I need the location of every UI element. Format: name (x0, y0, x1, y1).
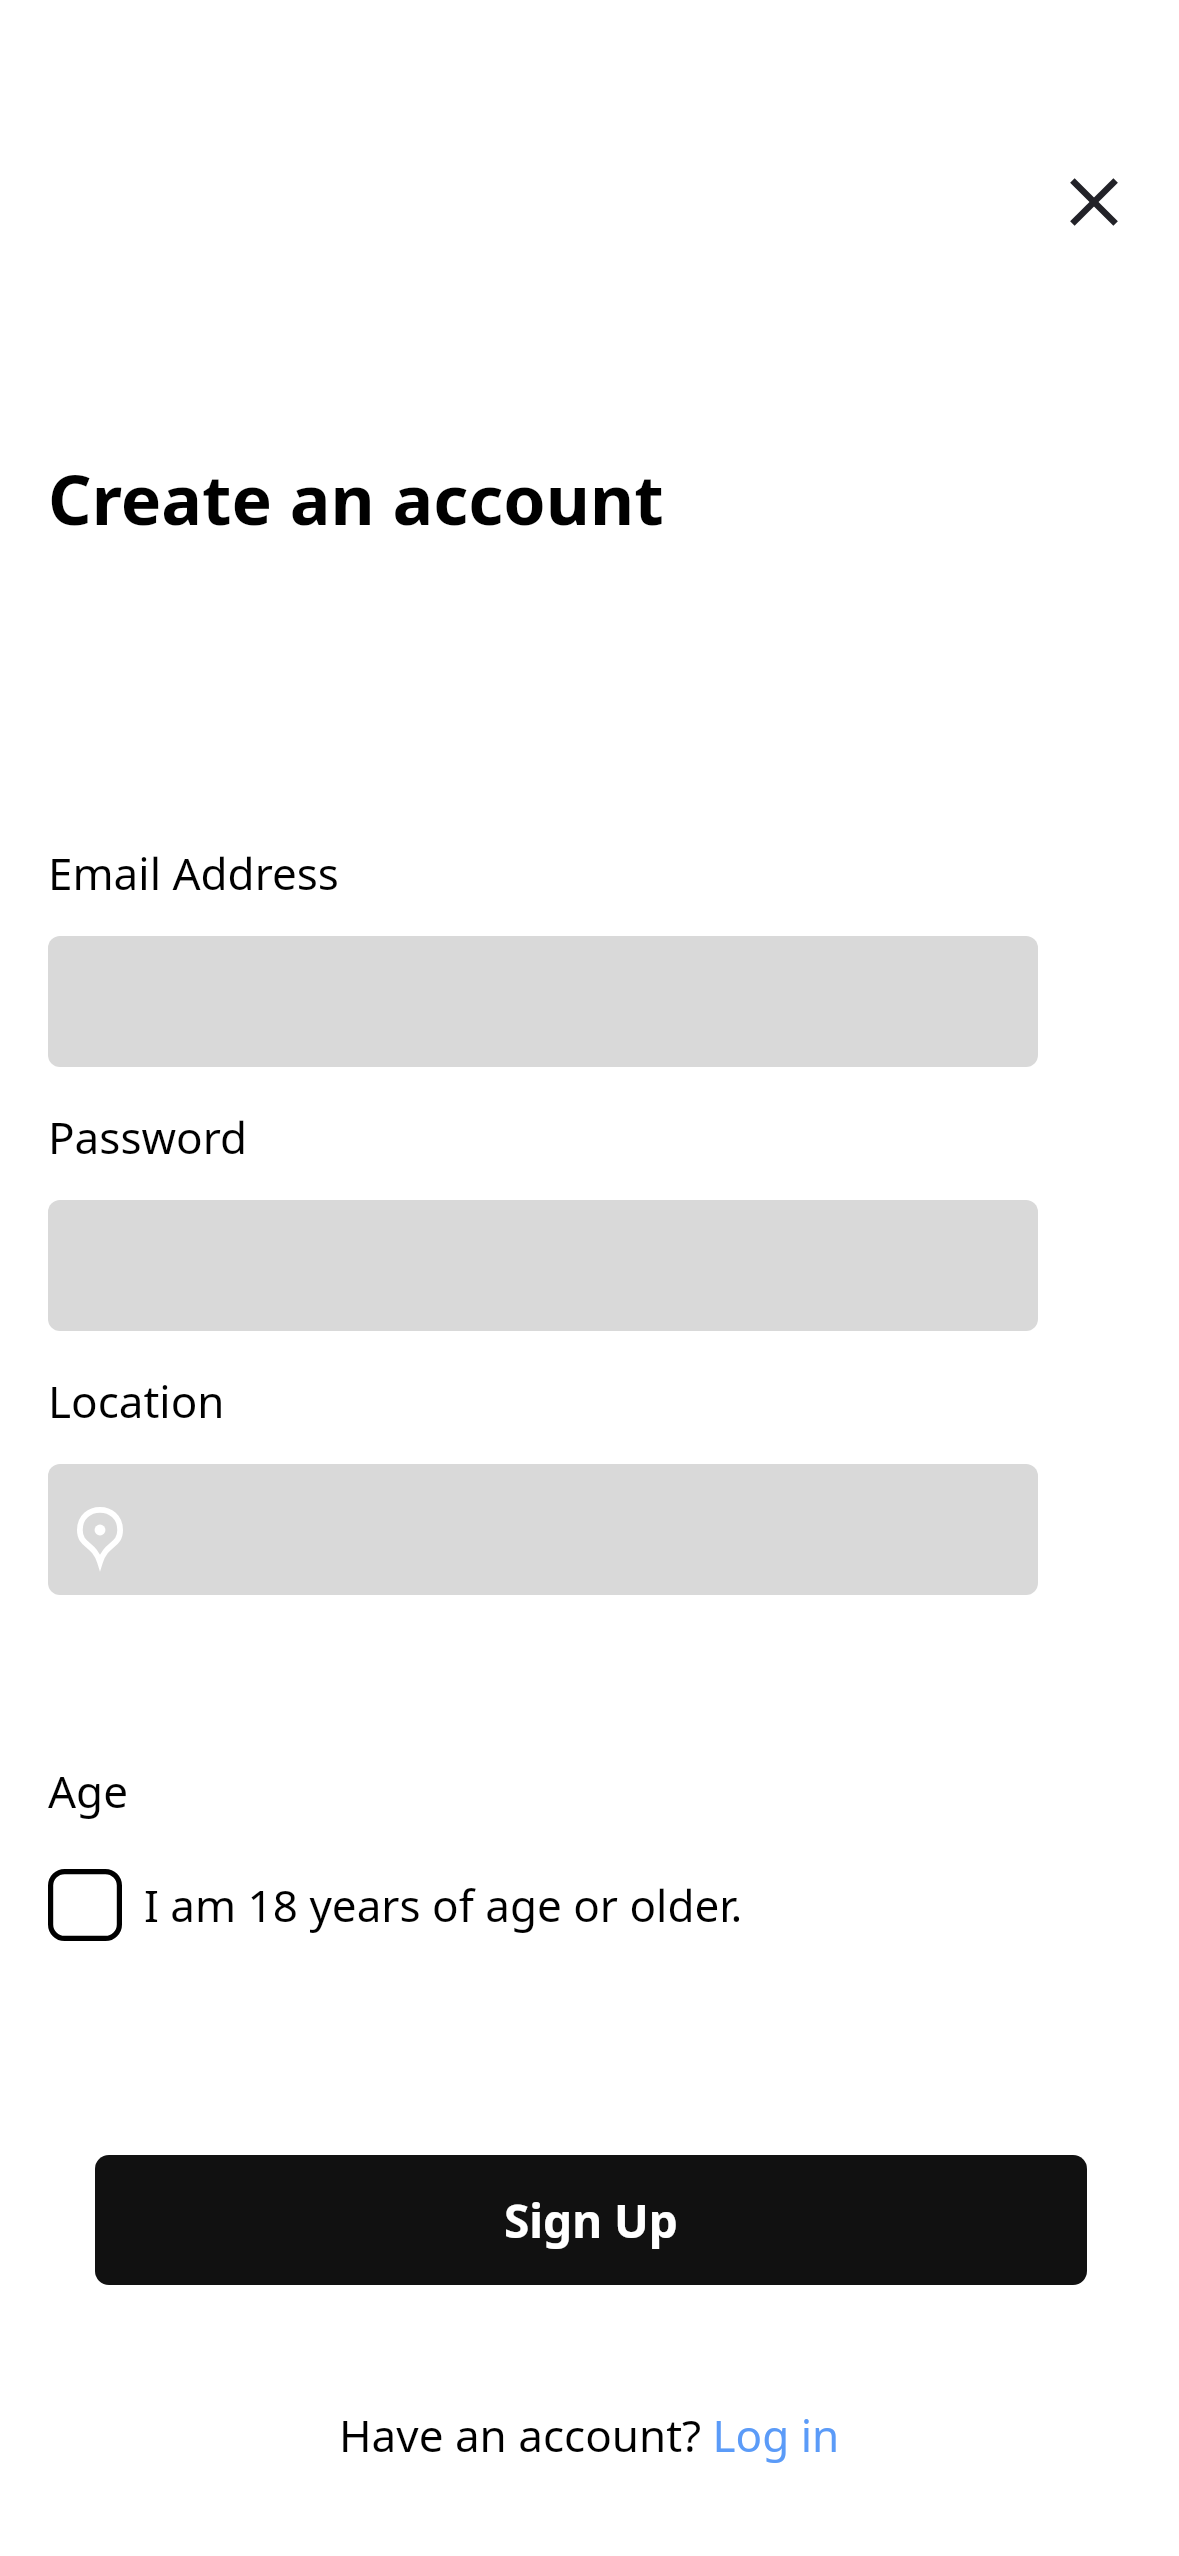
button[interactable]: Have an account? Log in (339, 2405, 840, 2465)
staticText: Create an account (48, 452, 664, 545)
staticText: I am 18 years of age or older. (144, 1875, 743, 1935)
staticText: Password (48, 1107, 248, 1167)
button[interactable]: Sign Up (95, 2155, 1087, 2285)
staticText: Location (48, 1371, 225, 1431)
button[interactable]: Close (1030, 138, 1158, 266)
staticText: Email Address (48, 843, 339, 903)
staticText: Sign Up (504, 2189, 678, 2252)
button[interactable]: I am 18 years of age or older. (40, 1858, 830, 1952)
button[interactable] (48, 1464, 1038, 1595)
staticText: Age (48, 1761, 128, 1821)
